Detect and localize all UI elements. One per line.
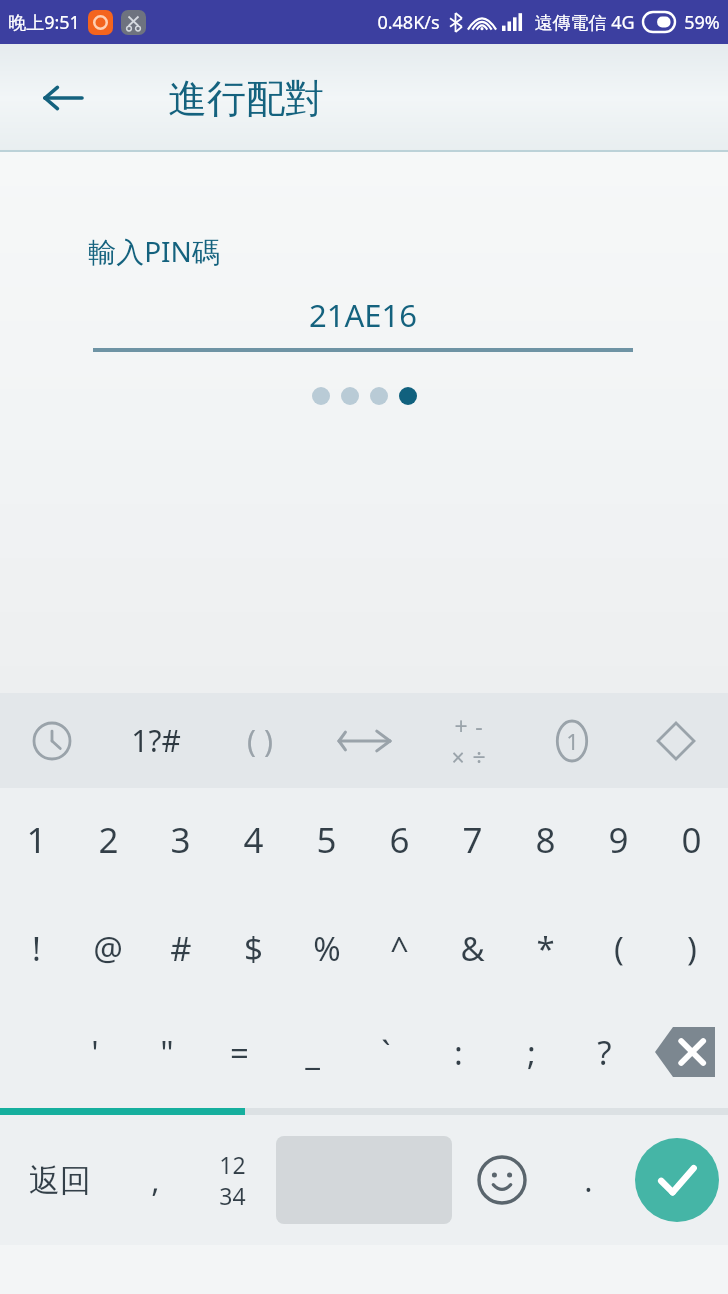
button[interactable]: 4 (217, 804, 290, 876)
button[interactable]: 6 (363, 804, 436, 876)
staticText: 0.48K/s (377, 10, 440, 35)
button[interactable]: ; (495, 1012, 568, 1092)
staticText: 21AE16 (309, 294, 417, 336)
staticText: ) (687, 926, 697, 971)
staticText: 1 (26, 816, 47, 864)
staticText: # (170, 926, 192, 971)
button[interactable]: ^ (363, 912, 436, 984)
button[interactable]: Number (520, 693, 624, 788)
button[interactable]: & (436, 912, 509, 984)
button[interactable]: Confirm (626, 1115, 728, 1245)
button[interactable]: ' (59, 1012, 131, 1092)
button[interactable]: ! (0, 912, 72, 984)
staticText: ! (32, 926, 41, 971)
staticText: 0 (681, 816, 702, 864)
staticText: ; (527, 1030, 536, 1075)
button[interactable]: , (120, 1115, 190, 1245)
staticText: 晚上9:51 (8, 10, 80, 35)
staticText: 34 (219, 1180, 246, 1211)
staticText: * (536, 926, 555, 971)
staticText: 2 (98, 816, 119, 864)
staticText: ' (91, 1030, 99, 1075)
button[interactable]: Math (416, 693, 520, 788)
staticText: 1?# (131, 720, 181, 761)
button[interactable]: 5 (290, 804, 363, 876)
staticText: ÷ (472, 741, 486, 772)
button[interactable]: ( (582, 912, 655, 984)
staticText: 7 (462, 816, 483, 864)
button[interactable]: 12 (190, 1115, 274, 1245)
staticText: × (451, 741, 465, 772)
staticText: ^ (390, 926, 409, 971)
staticText: @ (93, 926, 123, 971)
button[interactable]: 返回 (0, 1115, 120, 1245)
staticText: 5 (316, 816, 337, 864)
button[interactable]: # (144, 912, 217, 984)
staticText: 遠傳電信 4G (534, 10, 635, 35)
staticText: - (475, 710, 483, 741)
button[interactable]: ? (568, 1012, 641, 1092)
staticText: & (460, 926, 485, 971)
button[interactable]: Brackets (208, 693, 312, 788)
staticText: % (313, 926, 341, 971)
button[interactable]: ` (349, 1012, 422, 1092)
button[interactable]: _ (276, 1012, 349, 1092)
staticText: ` (381, 1030, 391, 1075)
button[interactable]: 21AE16 (93, 294, 633, 352)
button[interactable]: Tab (312, 693, 416, 788)
button[interactable]: . (550, 1115, 626, 1245)
button[interactable]: % (290, 912, 363, 984)
button[interactable]: Shapes (624, 693, 728, 788)
staticText: 8 (535, 816, 556, 864)
staticText: ( ) (247, 720, 273, 761)
button[interactable]: = (203, 1012, 276, 1092)
button[interactable]: 1 (0, 804, 72, 876)
button[interactable]: 7 (436, 804, 509, 876)
staticText: $ (244, 926, 263, 971)
button[interactable]: 9 (582, 804, 655, 876)
staticText: 進行配對 (168, 74, 324, 123)
staticText: = (230, 1030, 249, 1075)
staticText: 12 (219, 1149, 246, 1180)
button[interactable]: Emoji (454, 1115, 550, 1245)
staticText: 1 (566, 726, 579, 756)
staticText: + (454, 710, 468, 741)
button[interactable]: 8 (509, 804, 582, 876)
button[interactable]: 3 (144, 804, 217, 876)
button[interactable]: $ (217, 912, 290, 984)
staticText: ? (597, 1030, 612, 1075)
button[interactable]: " (131, 1012, 203, 1092)
button[interactable]: ) (655, 912, 728, 984)
button[interactable]: 2 (72, 804, 144, 876)
staticText: . (584, 1159, 593, 1201)
staticText: _ (305, 1030, 320, 1075)
staticText: 4 (243, 816, 264, 864)
staticText: 3 (170, 816, 191, 864)
button[interactable]: @ (72, 912, 144, 984)
staticText: 返回 (29, 1161, 91, 1200)
button[interactable]: Clock (0, 693, 104, 788)
button[interactable]: Backspace (641, 1012, 728, 1092)
button[interactable]: : (422, 1012, 495, 1092)
button[interactable]: * (509, 912, 582, 984)
button[interactable]: Symbols (104, 693, 208, 788)
staticText: 59% (684, 10, 720, 35)
staticText: : (454, 1030, 463, 1075)
staticText: " (160, 1030, 174, 1075)
staticText: ( (614, 926, 624, 971)
button[interactable]: Back (32, 67, 94, 129)
staticText: 輸入PIN碼 (88, 232, 220, 270)
staticText: 9 (608, 816, 629, 864)
staticText: 6 (389, 816, 410, 864)
button[interactable]: 0 (655, 804, 728, 876)
button[interactable]: Space (274, 1115, 454, 1245)
staticText: , (151, 1159, 160, 1201)
